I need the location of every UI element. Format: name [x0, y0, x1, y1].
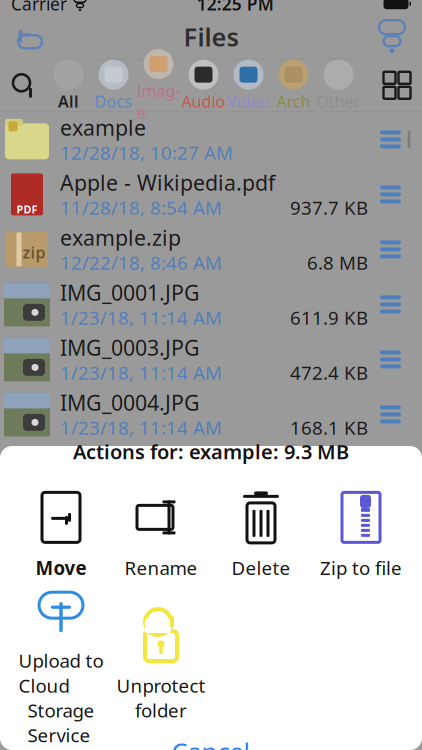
staticText: 11/28/18, 8:54 AM: [60, 195, 222, 220]
button[interactable]: IMG_0001.JPG: [0, 277, 422, 332]
staticText: 937.7 KB: [290, 195, 368, 220]
staticText: Other: [316, 91, 360, 112]
staticText: example: [60, 113, 146, 141]
staticText: Actions for: example: 9.3 MB: [73, 438, 349, 465]
button[interactable]: Video: [226, 60, 271, 110]
staticText: 472.4 KB: [290, 360, 368, 385]
staticText: folder: [135, 698, 187, 723]
button[interactable]: Unprotect: [111, 599, 211, 729]
button[interactable]: zip: [0, 222, 422, 277]
staticText: Storage Service: [27, 698, 94, 747]
button[interactable]: example: [0, 112, 422, 167]
button[interactable]: All: [46, 60, 91, 110]
staticText: 12:25 PM: [197, 0, 274, 15]
button[interactable]: IMG_0004.JPG: [0, 387, 422, 442]
staticText: 1/23/18, 11:14 AM: [60, 305, 222, 330]
button[interactable]: Cancel: [0, 729, 422, 750]
button[interactable]: Delete: [211, 469, 311, 599]
staticText: Cancel: [171, 735, 250, 750]
staticText: All: [58, 91, 79, 112]
staticText: 1/23/18, 11:14 AM: [60, 415, 222, 440]
staticText: Arch: [276, 91, 310, 112]
staticText: Carrier: [11, 0, 67, 15]
staticText: 611.9 KB: [290, 305, 368, 330]
staticText: Apple - Wikipedia.pdf: [60, 168, 275, 196]
staticText: Image: [136, 80, 180, 123]
button[interactable]: Arch: [271, 60, 316, 110]
staticText: Delete: [231, 555, 290, 580]
button[interactable]: Audio: [181, 60, 226, 110]
staticText: Zip to file: [320, 555, 402, 580]
staticText: PDF: [16, 202, 37, 216]
staticText: Audio: [181, 91, 225, 112]
button[interactable]: Back: [6, 16, 54, 58]
staticText: example.zip: [60, 223, 181, 251]
button[interactable]: Other: [316, 60, 361, 110]
button[interactable]: Grid view: [374, 60, 420, 110]
staticText: Rename: [124, 555, 197, 580]
staticText: 12/22/18, 8:46 AM: [60, 250, 222, 275]
button[interactable]: IMG_0003.JPG: [0, 332, 422, 387]
button[interactable]: Upload to Cloud: [11, 599, 111, 729]
staticText: IMG_0003.JPG: [60, 333, 200, 361]
staticText: Unprotect: [116, 673, 205, 698]
staticText: Files: [183, 20, 238, 53]
button[interactable]: Image: [136, 60, 181, 110]
staticText: Upload to Cloud: [18, 648, 103, 698]
staticText: zip: [22, 242, 45, 263]
staticText: 12/28/18, 10:27 AM: [60, 140, 233, 165]
button[interactable]: Move: [11, 469, 111, 599]
staticText: 168.1 KB: [290, 415, 368, 440]
staticText: Video: [227, 91, 270, 112]
staticText: Docs: [94, 91, 132, 112]
button[interactable]: Search: [2, 60, 46, 110]
staticText: 1/23/18, 11:14 AM: [60, 360, 222, 385]
button[interactable]: Wi-Fi transfer: [368, 16, 416, 58]
button[interactable]: Docs: [91, 60, 136, 110]
button[interactable]: PDF: [0, 167, 422, 222]
staticText: Move: [35, 555, 86, 580]
staticText: 6.8 MB: [307, 250, 368, 275]
button[interactable]: Rename: [111, 469, 211, 599]
staticText: IMG_0004.JPG: [60, 388, 200, 416]
staticText: IMG_0001.JPG: [60, 278, 200, 306]
button[interactable]: Zip to file: [311, 469, 411, 599]
